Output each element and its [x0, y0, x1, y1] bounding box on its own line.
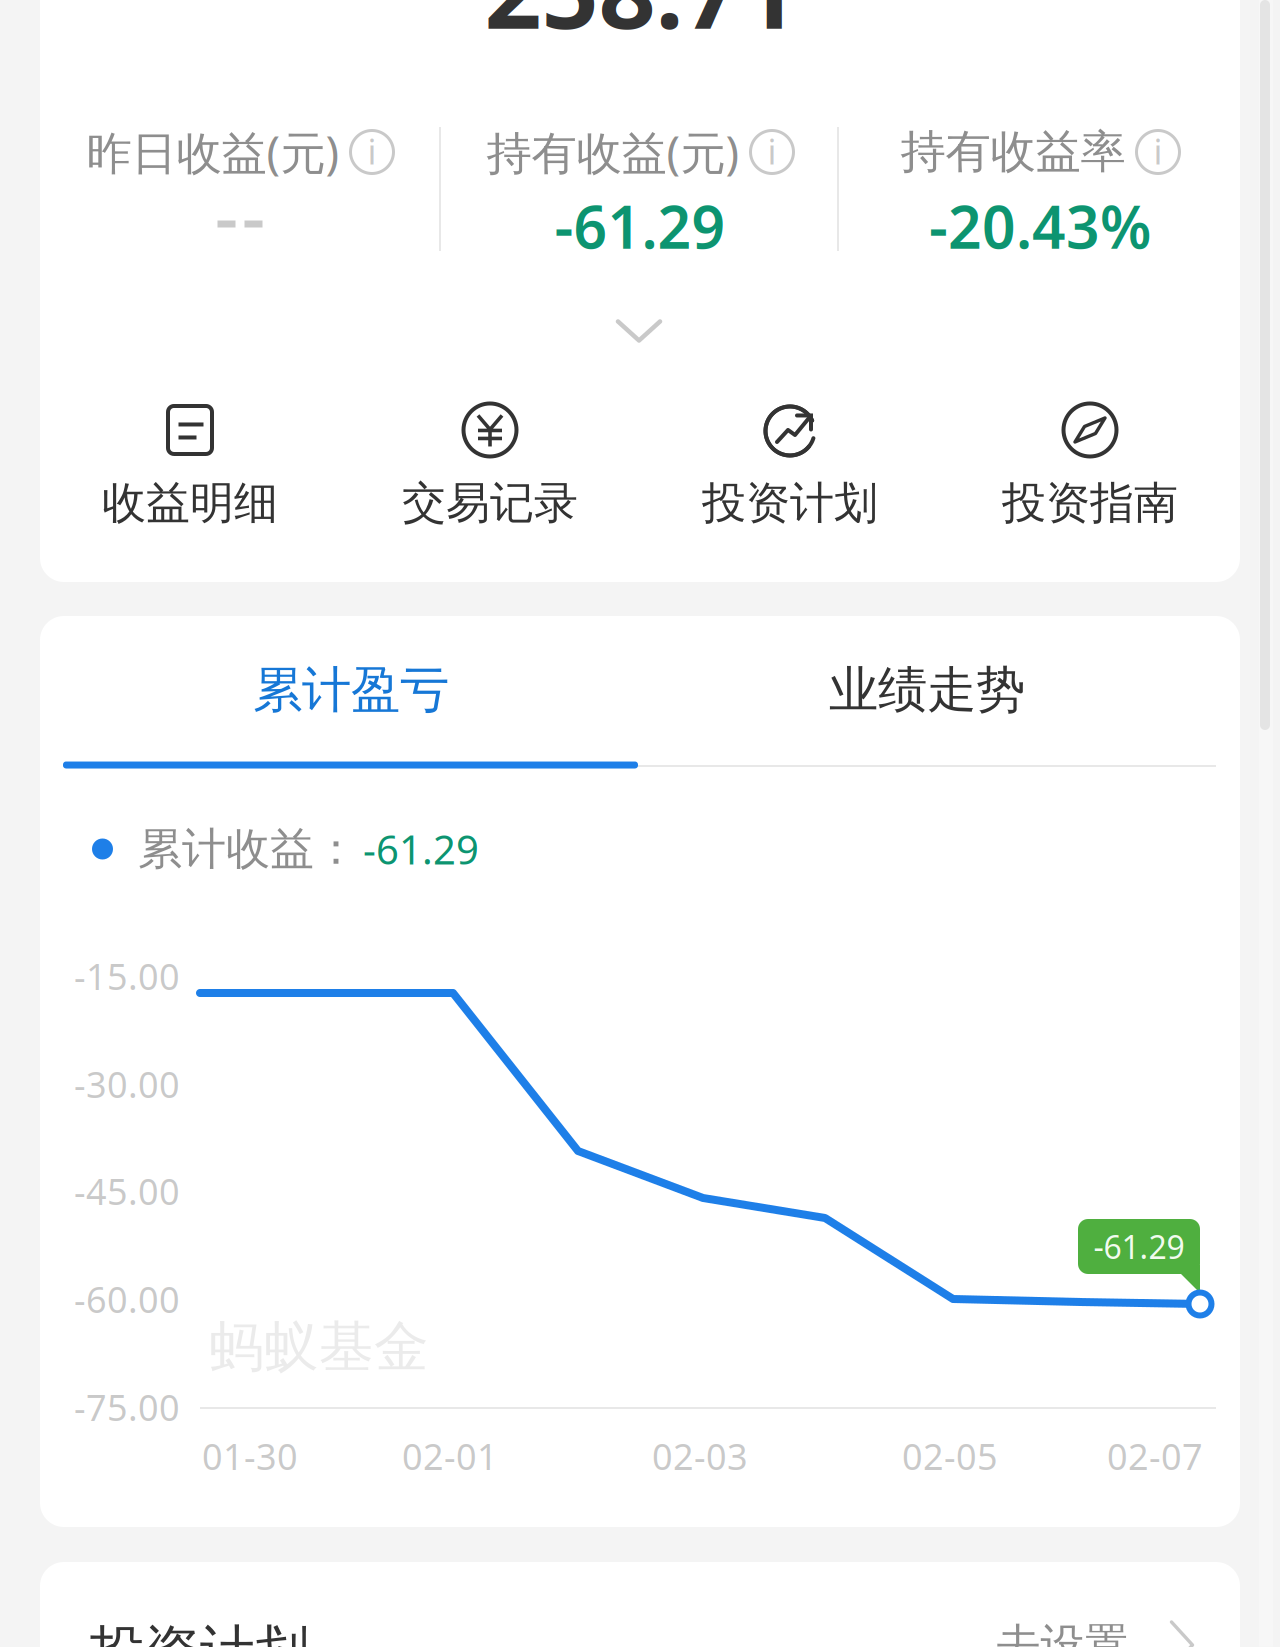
button[interactable]: 累计盈亏: [63, 616, 639, 764]
staticText: i: [367, 128, 376, 174]
staticText: 投资计划: [90, 1617, 310, 1647]
staticText: -60.00: [74, 1275, 180, 1323]
button[interactable]: Collapse summary: [598, 301, 680, 360]
staticText: -20.43%: [929, 187, 1151, 265]
staticText: i: [767, 128, 776, 174]
staticText: i: [1153, 128, 1162, 174]
staticText: 去设置: [996, 1618, 1128, 1647]
staticText: 业绩走势: [829, 660, 1025, 720]
staticText: -61.29: [363, 822, 479, 875]
button[interactable]: 投资计划: [640, 399, 940, 533]
button[interactable]: 投资指南: [940, 399, 1240, 533]
staticText: 持有收益率: [900, 124, 1125, 180]
staticText: 交易记录: [402, 476, 578, 530]
staticText: -61.29: [554, 187, 725, 265]
staticText: 02-01: [402, 1432, 498, 1480]
staticText: -15.00: [74, 952, 180, 1000]
staticText: -30.00: [74, 1060, 180, 1108]
staticText: 02-07: [1107, 1432, 1203, 1480]
staticText: 投资计划: [702, 476, 878, 530]
staticText: 累计收益：: [138, 822, 358, 876]
staticText: 02-03: [652, 1432, 748, 1480]
staticText: -61.29: [1093, 1225, 1184, 1268]
staticText: 蚂蚁基金: [209, 1313, 429, 1380]
staticText: 258.71: [484, 0, 797, 56]
button[interactable]: 业绩走势: [639, 616, 1215, 764]
staticText: 累计盈亏: [253, 660, 449, 720]
button[interactable]: 交易记录: [340, 399, 640, 533]
staticText: 01-30: [202, 1432, 298, 1480]
staticText: 投资指南: [1002, 476, 1178, 530]
staticText: 昨日收益(元): [86, 122, 339, 182]
button[interactable]: 收益明细: [40, 399, 340, 533]
staticText: 02-05: [902, 1432, 998, 1480]
staticText: 持有收益(元): [486, 122, 739, 182]
button[interactable]: 去设置: [996, 1618, 1193, 1647]
staticText: 收益明细: [102, 476, 278, 530]
staticText: -75.00: [74, 1383, 180, 1431]
staticText: -45.00: [74, 1167, 180, 1215]
